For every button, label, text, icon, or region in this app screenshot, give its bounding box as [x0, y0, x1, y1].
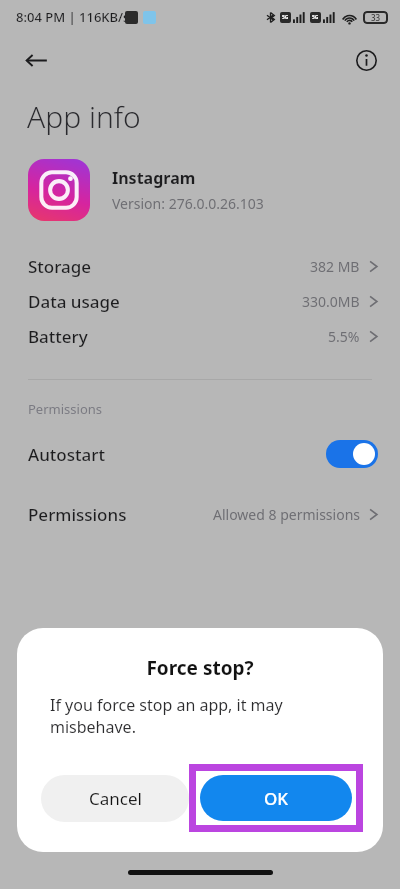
staticText: 382 MB — [310, 257, 360, 276]
staticText: 33 — [371, 12, 381, 23]
staticText: Allowed 8 permissions — [213, 505, 360, 524]
button[interactable]: Cancel — [41, 775, 189, 822]
staticText: Battery — [28, 325, 88, 348]
button[interactable]: Autostart — [0, 436, 400, 472]
staticText: OK — [264, 787, 289, 810]
staticText: 330.0MB — [302, 292, 360, 311]
staticText: 8:04 PM | 116KB/s — [16, 8, 130, 26]
button[interactable]: OK — [200, 775, 352, 821]
staticText: Permissions — [28, 400, 103, 418]
staticText: 5G — [312, 14, 319, 21]
staticText: App info — [27, 96, 141, 137]
staticText: Storage — [28, 255, 92, 278]
staticText: Autostart — [28, 443, 105, 466]
button[interactable]: Back — [14, 38, 58, 82]
button[interactable]: Storage — [0, 249, 400, 284]
staticText: Data usage — [28, 290, 120, 313]
staticText: Force stop? — [17, 655, 383, 681]
button[interactable]: App details — [346, 40, 386, 80]
staticText: Cancel — [89, 787, 142, 810]
staticText: Permissions — [28, 503, 127, 526]
staticText: 5G — [282, 14, 289, 21]
button[interactable]: Data usage — [0, 284, 400, 319]
button[interactable]: Battery — [0, 319, 400, 354]
button[interactable]: Permissions — [0, 497, 400, 532]
staticText: Instagram — [112, 167, 196, 189]
staticText: If you force stop an app, it may misbeha… — [50, 694, 345, 738]
staticText: 5.5% — [328, 327, 360, 346]
staticText: Version: 276.0.0.26.103 — [112, 194, 264, 213]
